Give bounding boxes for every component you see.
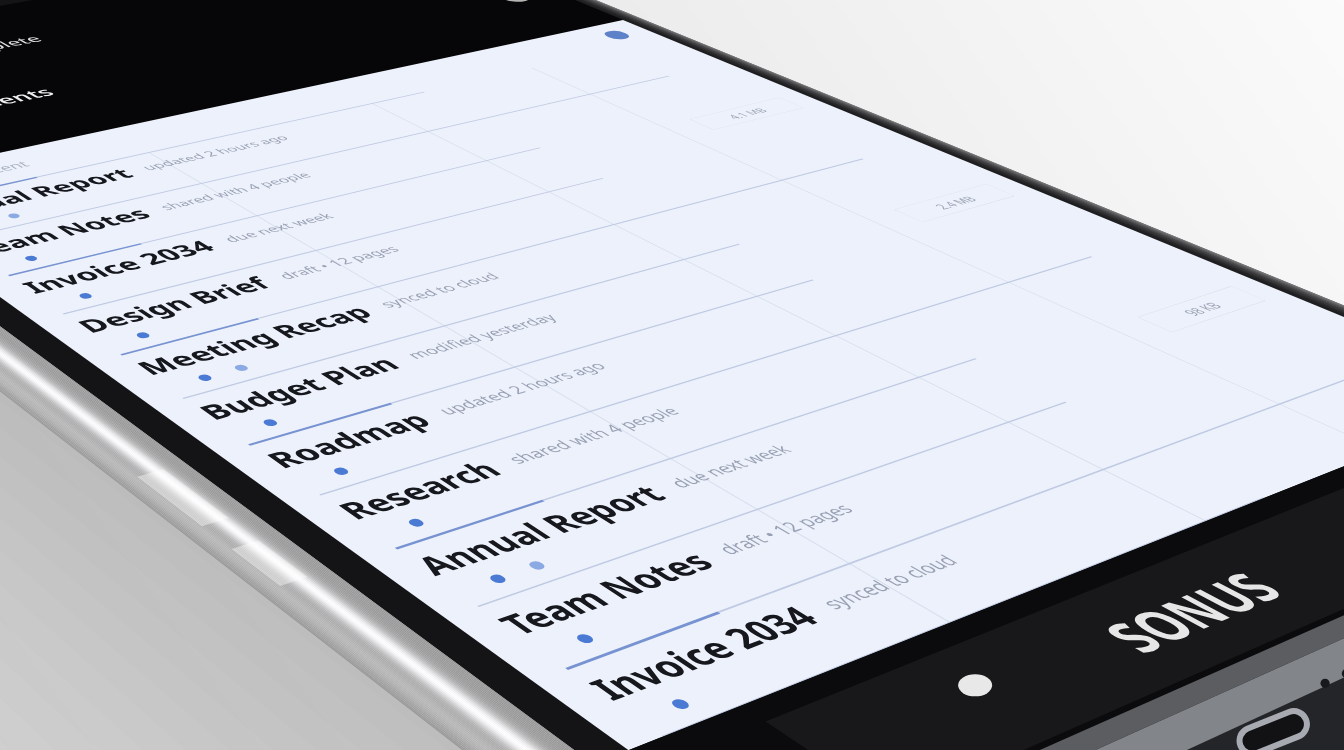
button[interactable]: Account bbox=[1086, 437, 1116, 467]
staticText: My Documents bbox=[104, 258, 353, 304]
staticText: updated 2 hours ago bbox=[315, 512, 512, 539]
button[interactable]: Annual Report bbox=[0, 490, 1150, 588]
button[interactable]: Menu bbox=[44, 264, 78, 298]
staticText: 8 AM • sync complete bbox=[120, 102, 441, 143]
staticText: shared with 4 people bbox=[269, 609, 466, 636]
staticText: All files › Recent bbox=[34, 437, 208, 467]
button[interactable]: Invoice 2034 bbox=[0, 685, 1150, 750]
staticText: Annual Report bbox=[34, 501, 293, 550]
staticText: due next week bbox=[280, 707, 417, 734]
button[interactable]: Team Notes bbox=[0, 588, 1150, 685]
